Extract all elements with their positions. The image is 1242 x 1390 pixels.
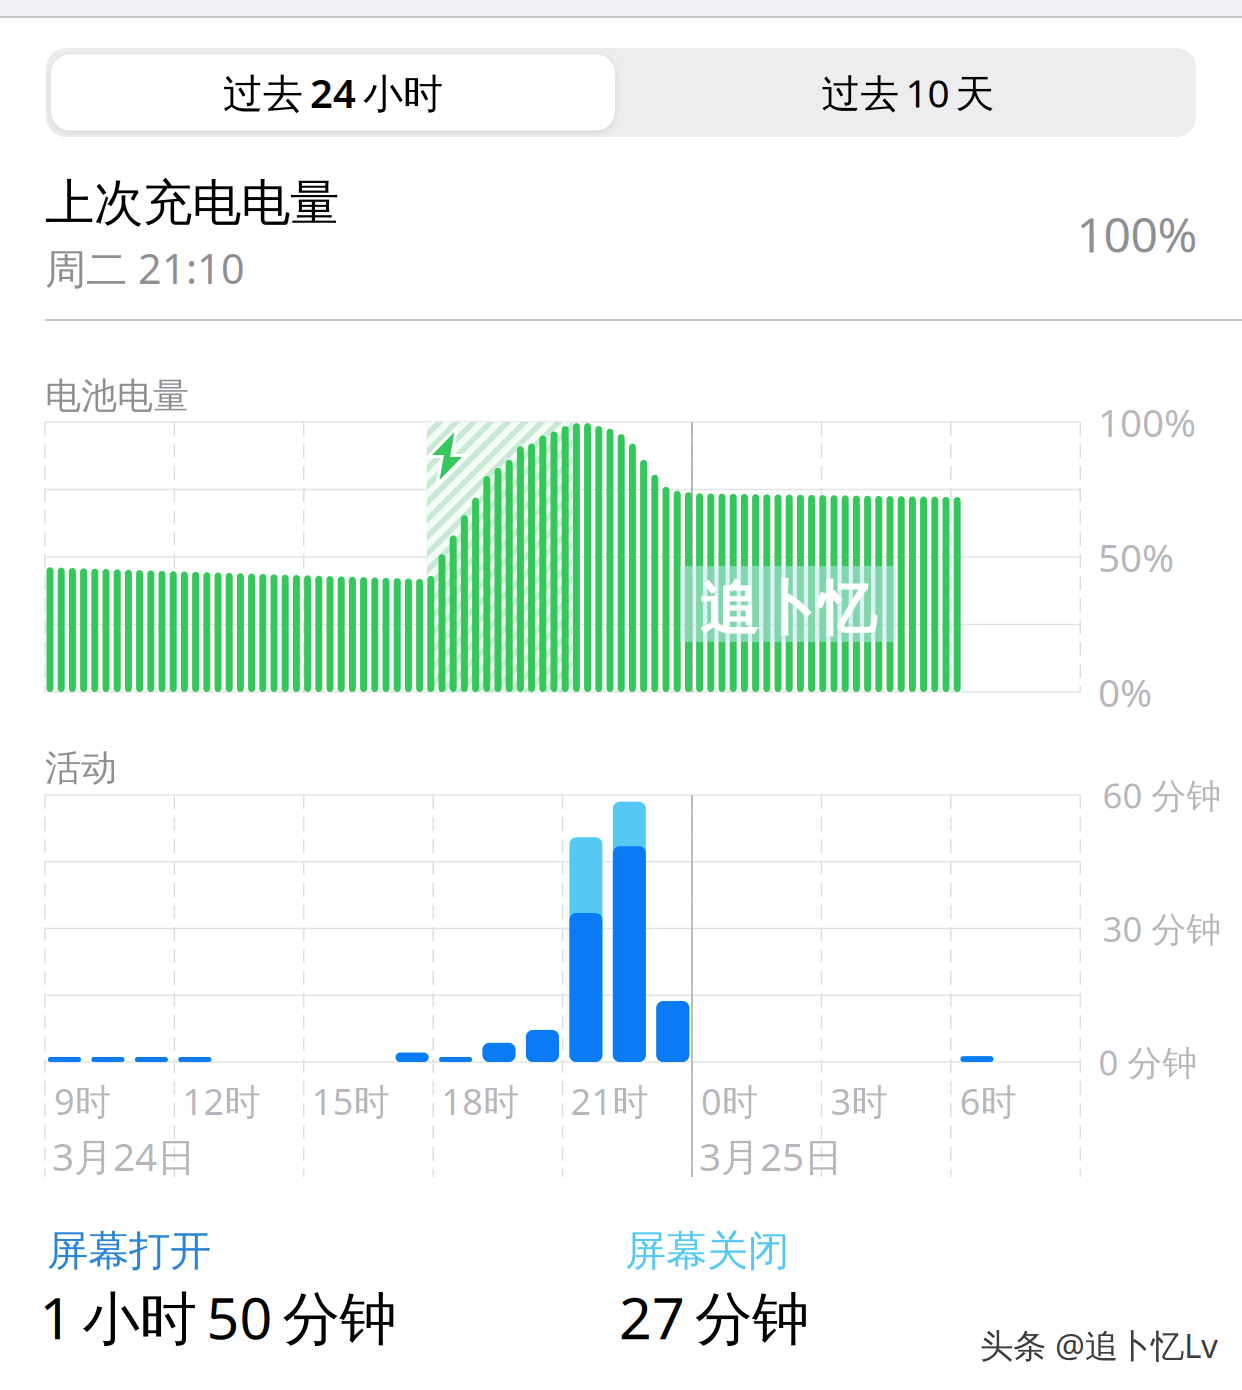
staticText: 0时 <box>701 1077 758 1125</box>
staticText: 18时 <box>441 1077 519 1125</box>
staticText: 100% <box>1076 202 1197 266</box>
staticText: 头条 @追卜忆Lv <box>980 1323 1218 1367</box>
staticText: 9时 <box>54 1077 111 1125</box>
staticText: 6时 <box>960 1077 1017 1125</box>
staticText: 30 分钟 <box>1102 905 1221 951</box>
button[interactable]: 过去 24 小时 <box>45 48 620 137</box>
staticText: 屏幕关闭 <box>625 1226 789 1276</box>
staticText: 3月24日 <box>52 1130 196 1182</box>
staticText: 60 分钟 <box>1102 772 1221 818</box>
staticText: 电池电量 <box>45 374 189 418</box>
staticText: 0 分钟 <box>1098 1039 1197 1085</box>
staticText: 27 分钟 <box>619 1279 809 1355</box>
staticText: 3时 <box>830 1077 887 1125</box>
staticText: 15时 <box>312 1077 390 1125</box>
staticText: 追卜忆 <box>699 573 876 645</box>
staticText: 上次充电电量 <box>45 173 339 233</box>
staticText: 21时 <box>571 1077 649 1125</box>
staticText: 1 小时 50 分钟 <box>39 1279 396 1355</box>
button[interactable]: 过去 10 天 <box>620 48 1195 137</box>
staticText: 12时 <box>182 1077 260 1125</box>
staticText: 50% <box>1098 531 1174 583</box>
staticText: 活动 <box>45 746 117 790</box>
staticText: 周二 21:10 <box>45 241 245 295</box>
staticText: 0% <box>1098 666 1152 718</box>
staticText: 屏幕打开 <box>47 1226 211 1276</box>
staticText: 过去 10 天 <box>821 67 994 118</box>
staticText: 过去 24 小时 <box>223 66 443 119</box>
staticText: 3月25日 <box>699 1130 843 1182</box>
staticText: 100% <box>1098 396 1196 448</box>
